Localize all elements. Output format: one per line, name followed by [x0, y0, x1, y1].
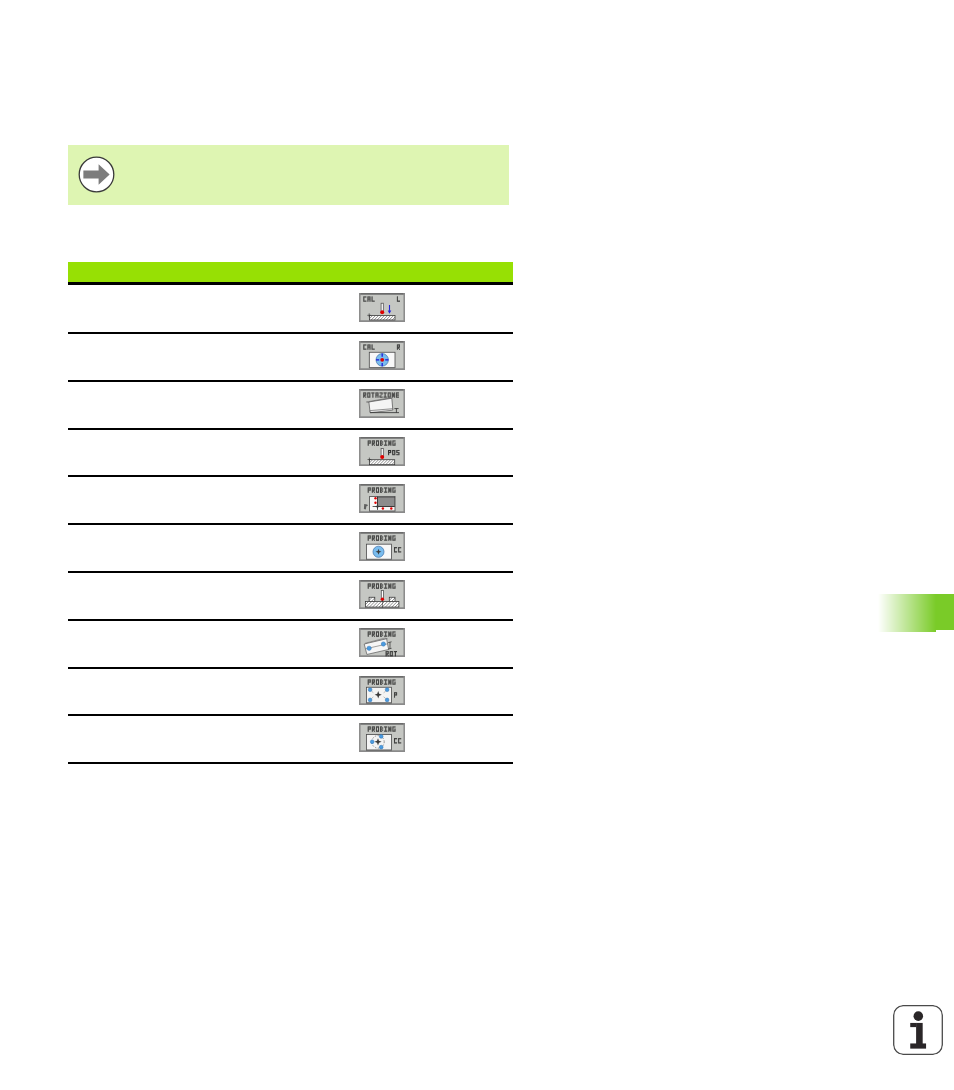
button[interactable]: Probing plane	[359, 484, 405, 513]
button[interactable]: Probing circle center	[359, 532, 405, 561]
button[interactable]: Continue	[68, 145, 509, 205]
button[interactable]: Probing circle	[359, 723, 405, 752]
other: Continue	[78, 156, 115, 193]
button[interactable]: Probing rotation	[359, 628, 405, 657]
button[interactable]: Calibrate radius	[359, 341, 405, 370]
button[interactable]: Probing position	[359, 437, 405, 466]
button[interactable]: Basic rotation	[359, 389, 405, 418]
button[interactable]: Information	[893, 1005, 943, 1055]
button[interactable]: Probing surface	[359, 580, 405, 609]
button[interactable]: Probing point	[359, 676, 405, 705]
button[interactable]: Calibrate length	[359, 293, 405, 322]
